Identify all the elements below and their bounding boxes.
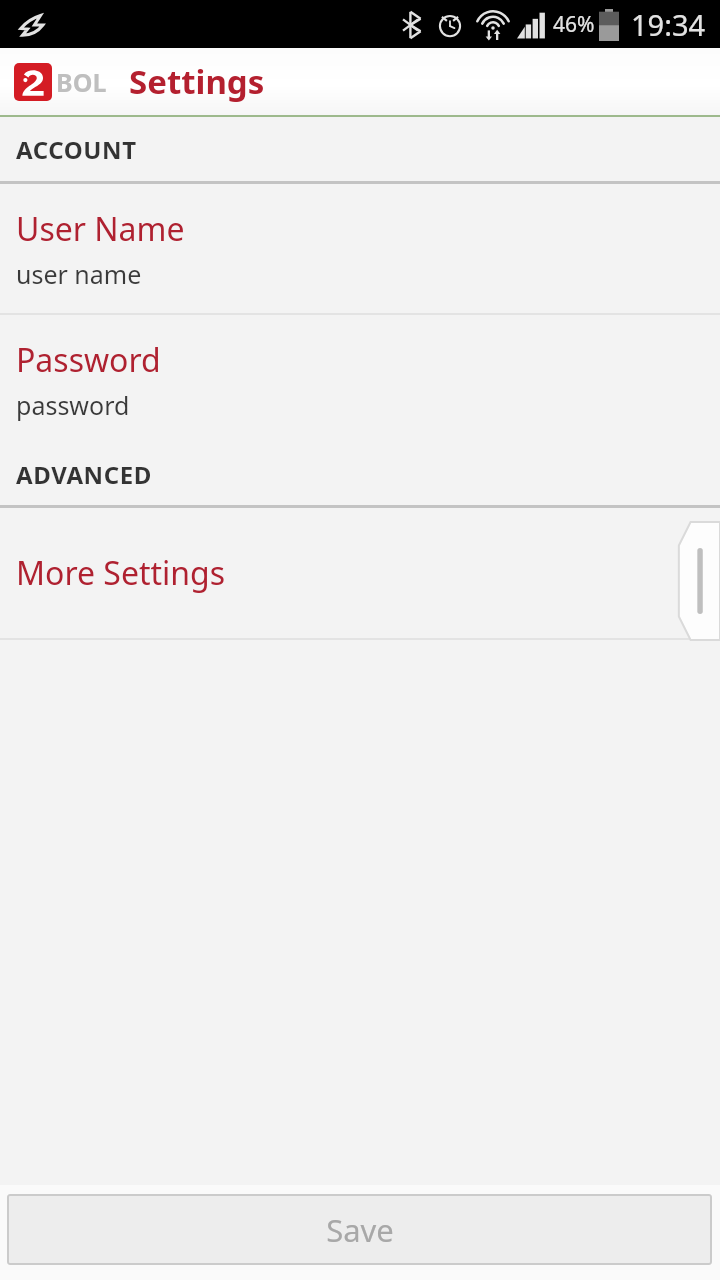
staticText: User Name <box>16 207 185 251</box>
button[interactable]: Save <box>7 1194 712 1265</box>
staticText: Settings <box>129 59 265 104</box>
button[interactable]: Password <box>0 315 720 444</box>
button[interactable]: More Settings <box>0 508 720 638</box>
button[interactable]: User Name <box>0 184 720 313</box>
staticText: ACCOUNT <box>16 133 137 166</box>
staticText: ADVANCED <box>16 458 152 491</box>
staticText: 46% <box>553 10 595 39</box>
staticText: Save <box>326 1209 394 1251</box>
staticText: BOL <box>56 65 107 99</box>
staticText: password <box>16 388 130 422</box>
staticText: More Settings <box>16 551 226 595</box>
staticText: Password <box>16 338 161 382</box>
staticText: 19:34 <box>631 5 706 44</box>
staticText: user name <box>16 257 142 291</box>
